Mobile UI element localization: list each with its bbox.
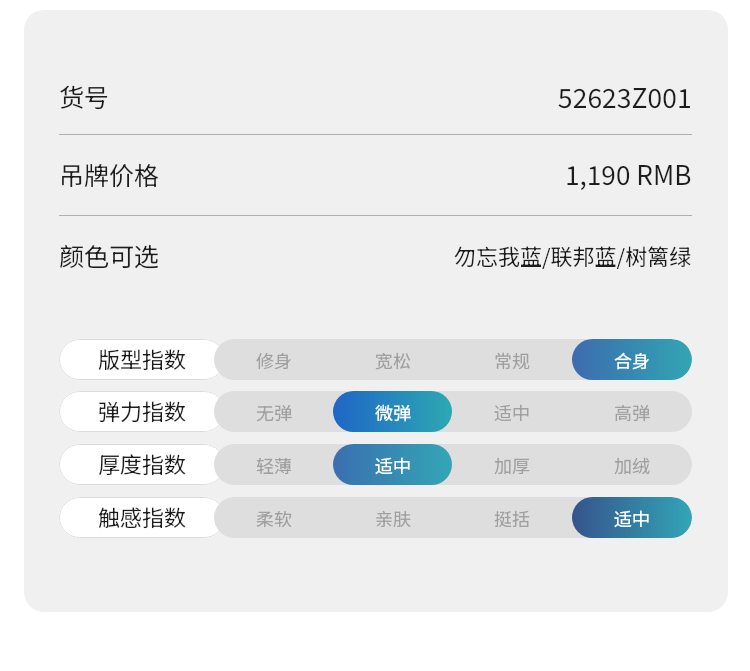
staticText: 柔软	[256, 505, 292, 531]
button[interactable]: 加绒	[572, 444, 692, 485]
staticText: 弹力指数	[98, 394, 187, 426]
button[interactable]: 宽松	[333, 339, 452, 380]
button[interactable]: 版型指数	[59, 339, 225, 380]
staticText: 高弹	[614, 399, 650, 425]
button[interactable]: 微弹	[333, 391, 452, 432]
button[interactable]: 厚度指数	[59, 444, 225, 485]
staticText: 修身	[256, 347, 292, 373]
staticText: 加绒	[614, 452, 650, 478]
staticText: 宽松	[375, 347, 411, 373]
staticText: 无弹	[256, 399, 292, 425]
staticText: 亲肤	[375, 505, 411, 531]
button[interactable]: 常规	[452, 339, 572, 380]
button[interactable]: 合身	[572, 339, 692, 380]
staticText: 加厚	[494, 452, 530, 478]
staticText: 1,190 RMB	[565, 155, 692, 193]
button[interactable]: 适中	[333, 444, 452, 485]
staticText: 微弹	[375, 399, 411, 425]
button[interactable]: 加厚	[452, 444, 572, 485]
staticText: 吊牌价格	[59, 156, 160, 192]
button[interactable]: 高弹	[572, 391, 692, 432]
staticText: 合身	[614, 347, 650, 373]
button[interactable]: 弹力指数	[59, 391, 225, 432]
button[interactable]: 无弹	[214, 391, 333, 432]
button[interactable]: 轻薄	[214, 444, 333, 485]
button[interactable]: 适中	[572, 497, 692, 538]
staticText: 适中	[494, 399, 530, 425]
staticText: 触感指数	[98, 500, 187, 532]
staticText: 颜色可选	[59, 237, 160, 273]
button[interactable]: 亲肤	[333, 497, 452, 538]
staticText: 挺括	[494, 505, 530, 531]
staticText: 勿忘我蓝/联邦蓝/树篱绿	[454, 239, 692, 271]
button[interactable]: 触感指数	[59, 497, 225, 538]
button[interactable]: 柔软	[214, 497, 333, 538]
staticText: 适中	[375, 452, 411, 478]
staticText: 适中	[614, 505, 650, 531]
staticText: 厚度指数	[98, 447, 187, 479]
staticText: 货号	[59, 78, 110, 114]
staticText: 常规	[494, 347, 530, 373]
staticText: 轻薄	[256, 452, 292, 478]
staticText: 版型指数	[98, 342, 187, 374]
button[interactable]: 挺括	[452, 497, 572, 538]
button[interactable]: 修身	[214, 339, 333, 380]
staticText: 52623Z001	[558, 77, 692, 115]
button[interactable]: 适中	[452, 391, 572, 432]
